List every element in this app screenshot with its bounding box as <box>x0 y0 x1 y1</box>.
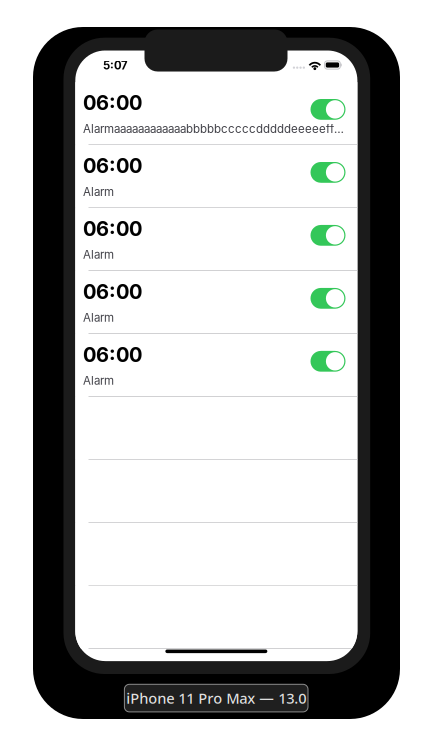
button[interactable]: Alarm on <box>310 288 345 309</box>
button[interactable]: Alarm on <box>310 351 345 372</box>
button[interactable]: Alarm on <box>310 162 345 183</box>
button[interactable]: Alarm on <box>310 225 345 246</box>
staticText: 06:00 <box>83 91 142 115</box>
staticText: Alarm <box>83 248 114 262</box>
staticText: 5:07 <box>103 59 128 72</box>
button[interactable]: Alarm on <box>310 99 345 120</box>
button[interactable]: 06:00 <box>75 208 357 270</box>
staticText: iPhone 11 Pro Max — 13.0 <box>126 688 306 708</box>
staticText: 06:00 <box>83 217 142 241</box>
staticText: Alarm <box>83 185 114 199</box>
staticText: Alarmaaaaaaaaaaaabbbbbcccccdddddeeeeefff… <box>83 122 345 136</box>
staticText: 06:00 <box>83 154 142 178</box>
staticText: 06:00 <box>83 343 142 367</box>
staticText: 06:00 <box>83 280 142 304</box>
button[interactable]: 06:00 <box>75 271 357 333</box>
button[interactable]: 06:00 <box>75 145 357 207</box>
staticText: Alarm <box>83 374 114 388</box>
staticText: Alarm <box>83 311 114 325</box>
button[interactable]: iPhone 11 Pro Max — 13.0 <box>124 684 308 712</box>
button[interactable]: 06:00 <box>75 82 357 144</box>
button[interactable]: 06:00 <box>75 334 357 396</box>
